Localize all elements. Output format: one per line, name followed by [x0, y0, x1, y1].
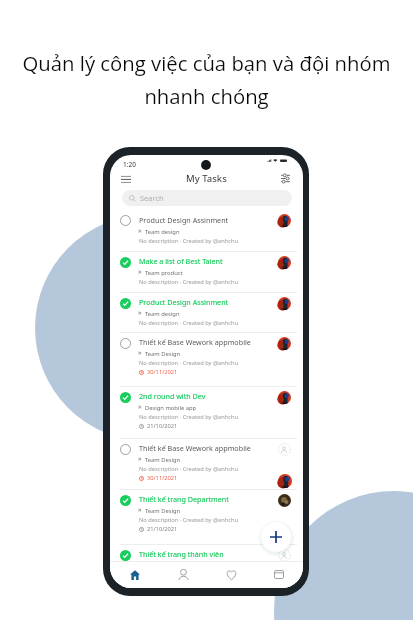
staticText: Thiết kế Base Wework appmobile — [139, 337, 251, 347]
staticText: Make a list of Best Talent — [139, 256, 223, 266]
button[interactable]: Make a list of Best Talent — [110, 252, 303, 292]
button[interactable]: Product Design Assinment — [110, 293, 303, 332]
staticText: » — [138, 226, 142, 236]
staticText: » — [138, 308, 142, 318]
staticText: No description · Created by @anhchu — [139, 413, 238, 421]
staticText: » — [138, 348, 142, 358]
button[interactable]: Profile — [159, 561, 207, 588]
button[interactable]: Thiết kế Base Wework appmobile — [110, 333, 303, 386]
staticText: No description · Created by @anhchu — [139, 278, 238, 286]
button[interactable]: Filter — [275, 168, 295, 188]
staticText: Product Design Assinment — [139, 297, 229, 307]
staticText: 21/10/2021 — [147, 422, 178, 430]
staticText: Design mobile app — [145, 404, 197, 412]
staticText: Thiết kế trang Department — [139, 494, 229, 504]
button[interactable]: Calendar — [255, 561, 303, 588]
staticText: No description · Created by @anhchu — [139, 359, 238, 367]
staticText: Quản lý công việc của bạn và đội nhóm nh… — [0, 49, 413, 109]
staticText: 1:20 — [123, 160, 136, 169]
staticText: » — [138, 560, 142, 570]
staticText: Team design — [145, 228, 180, 236]
staticText: » — [138, 505, 142, 515]
button[interactable]: Menu — [114, 167, 138, 191]
button[interactable]: Add task — [261, 522, 291, 552]
staticText: No description · Created by @anhchu — [139, 237, 238, 245]
staticText: No description · Created by @anhchu — [139, 571, 238, 579]
staticText: No description · Created by @anhchu — [139, 465, 238, 473]
button[interactable]: Thiết kế trang Department — [110, 490, 303, 544]
staticText: My Tasks — [186, 172, 227, 185]
staticText: 30/11/2021 — [147, 368, 178, 376]
staticText: 30/11/2021 — [147, 474, 178, 482]
staticText: 2nd round with Dev — [139, 391, 206, 401]
button[interactable]: Search — [122, 190, 292, 206]
button[interactable]: Thiết kế Base Wework appmobile — [110, 439, 303, 489]
staticText: » — [138, 267, 142, 277]
staticText: No description · Created by @anhchu — [139, 319, 238, 327]
button[interactable]: Product Design Assinment — [110, 206, 303, 251]
button[interactable]: Favorites — [207, 561, 255, 588]
staticText: No description · Created by @anhchu — [139, 516, 238, 524]
staticText: Team Design — [145, 350, 181, 358]
staticText: » — [138, 402, 142, 412]
staticText: Team Design — [145, 507, 181, 515]
button[interactable]: Home — [110, 561, 159, 588]
staticText: Team design — [145, 310, 180, 318]
staticText: Product Design Assinment — [139, 215, 229, 225]
staticText: Thiết kế Base Wework appmobile — [139, 443, 251, 453]
button[interactable]: 2nd round with Dev — [110, 387, 303, 438]
staticText: Team product — [145, 269, 183, 277]
staticText: Thiết kế trang thành viên — [139, 549, 224, 559]
staticText: 21/10/2021 — [147, 525, 178, 533]
staticText: » — [138, 454, 142, 464]
button[interactable]: Thiết kế trang thành viên — [110, 545, 303, 562]
staticText: Team Design — [145, 456, 181, 464]
staticText: Search — [140, 193, 164, 203]
